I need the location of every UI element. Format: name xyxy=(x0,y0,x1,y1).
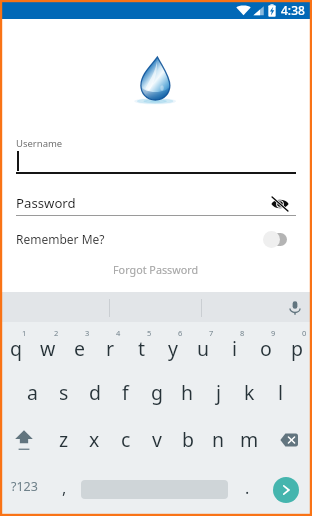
button[interactable]: Forgot Password xyxy=(113,262,199,277)
staticText: r xyxy=(106,335,115,362)
staticText: d xyxy=(89,379,101,406)
button[interactable]: 9 xyxy=(250,322,281,369)
staticText: 9 xyxy=(271,328,276,338)
button[interactable]: g xyxy=(141,369,172,416)
staticText: 7 xyxy=(209,328,214,338)
button[interactable]: 2 xyxy=(32,322,64,369)
staticText: 0 xyxy=(302,328,307,338)
staticText: w xyxy=(40,335,56,362)
button[interactable]: Shift xyxy=(0,416,48,463)
staticText: b xyxy=(182,426,194,453)
staticText: 4:38 xyxy=(281,2,305,18)
button[interactable]: n xyxy=(203,416,234,463)
button[interactable]: a xyxy=(16,369,48,416)
button[interactable]: f xyxy=(110,369,141,416)
staticText: k xyxy=(244,379,255,406)
staticText: v xyxy=(152,426,162,453)
staticText: x xyxy=(89,426,100,453)
staticText: f xyxy=(122,379,129,406)
button[interactable]: 8 xyxy=(219,322,250,369)
staticText: t xyxy=(138,335,146,362)
button[interactable]: 1 xyxy=(0,322,32,369)
staticText: 3 xyxy=(85,328,90,338)
staticText: i xyxy=(232,335,238,362)
staticText: j xyxy=(216,379,222,406)
button[interactable]: z xyxy=(48,416,79,463)
button[interactable]: c xyxy=(110,416,141,463)
staticText: 2 xyxy=(54,328,59,338)
button[interactable]: v xyxy=(141,416,172,463)
staticText: z xyxy=(59,426,69,453)
button[interactable]: 4 xyxy=(95,322,126,369)
button[interactable]: Show password xyxy=(268,192,292,216)
button[interactable]: 6 xyxy=(157,322,188,369)
staticText: h xyxy=(181,379,194,406)
button[interactable]: 7 xyxy=(188,322,219,369)
button[interactable]: 3 xyxy=(64,322,95,369)
button[interactable]: Voice input xyxy=(284,297,306,319)
staticText: u xyxy=(197,335,210,362)
button[interactable]: j xyxy=(203,369,234,416)
staticText: p xyxy=(291,335,303,362)
button[interactable]: . xyxy=(228,463,264,516)
staticText: n xyxy=(212,426,225,453)
button[interactable]: ?123 xyxy=(0,463,48,516)
staticText: , xyxy=(62,477,67,499)
button[interactable]: m xyxy=(234,416,265,463)
staticText: ?123 xyxy=(11,478,38,495)
button[interactable]: Remember Me? xyxy=(16,228,296,250)
button[interactable]: b xyxy=(172,416,203,463)
button[interactable]: l xyxy=(265,369,296,416)
staticText: m xyxy=(240,426,259,453)
staticText: 5 xyxy=(147,328,152,338)
staticText: Remember Me? xyxy=(16,231,105,247)
button[interactable]: , xyxy=(48,463,78,516)
button[interactable] xyxy=(263,230,287,248)
button[interactable]: 0 xyxy=(281,322,312,369)
staticText: a xyxy=(27,379,38,406)
staticText: l xyxy=(278,379,284,406)
staticText: y xyxy=(168,335,178,362)
button[interactable]: d xyxy=(79,369,110,416)
button[interactable]: Backspace xyxy=(265,416,312,463)
staticText: c xyxy=(121,426,131,453)
staticText: e xyxy=(74,335,85,362)
staticText: g xyxy=(151,379,163,406)
staticText: 8 xyxy=(240,328,245,338)
button[interactable]: 5 xyxy=(126,322,157,369)
staticText: 1 xyxy=(22,328,27,338)
staticText: o xyxy=(260,335,272,362)
staticText: Password xyxy=(16,194,76,212)
button[interactable]: Enter xyxy=(273,477,299,503)
staticText: 6 xyxy=(178,328,183,338)
staticText: s xyxy=(59,379,69,406)
button[interactable]: h xyxy=(172,369,203,416)
button[interactable]: k xyxy=(234,369,265,416)
staticText: q xyxy=(10,335,22,362)
button[interactable]: s xyxy=(48,369,79,416)
staticText: Username xyxy=(16,137,63,150)
staticText: . xyxy=(245,477,250,499)
button[interactable]: Space xyxy=(78,463,228,516)
button[interactable]: x xyxy=(79,416,110,463)
staticText: 4 xyxy=(116,328,121,338)
